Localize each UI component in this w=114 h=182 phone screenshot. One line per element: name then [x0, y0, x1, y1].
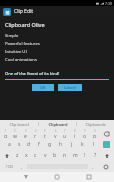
staticText: OK [40, 85, 46, 90]
button[interactable]: m [70, 151, 80, 160]
staticText: e [24, 133, 27, 138]
button[interactable]: 0 [90, 129, 100, 138]
button[interactable]: h [55, 140, 66, 149]
button[interactable]: 9 [80, 129, 90, 138]
button[interactable]: shift [1, 151, 13, 160]
button[interactable]: Recents [83, 172, 95, 182]
staticText: Clip Edit [14, 8, 34, 15]
button[interactable]: b [50, 151, 60, 160]
staticText: 3 [25, 129, 27, 133]
staticText: k [81, 141, 84, 148]
staticText: n [63, 152, 67, 159]
button[interactable]: backspace [100, 129, 113, 138]
button[interactable]: 1 [1, 129, 10, 138]
staticText: x [25, 152, 28, 159]
button[interactable]: 4 [30, 129, 40, 138]
staticText: One of the finest of its kind! [5, 71, 60, 77]
button[interactable]: n [60, 151, 70, 160]
staticText: . [92, 164, 94, 170]
staticText: , [21, 164, 23, 170]
button[interactable]: Clipboard [39, 120, 76, 128]
button[interactable]: shift2 [100, 151, 113, 160]
button[interactable]: , [17, 162, 27, 171]
staticText: f [38, 141, 40, 148]
staticText: Clipboard Olive [5, 21, 45, 28]
button[interactable]: Emoji [98, 162, 113, 171]
button[interactable]: 6 [50, 129, 60, 138]
staticText: c [34, 152, 37, 159]
button[interactable]: ! [80, 151, 90, 160]
button[interactable]: z [13, 151, 22, 160]
button[interactable]: s [14, 140, 24, 149]
button[interactable]: j [66, 140, 77, 149]
staticText: s [18, 141, 21, 148]
staticText: 7 [64, 129, 66, 133]
staticText: Clip board [9, 122, 29, 127]
staticText: Clipboard [48, 122, 68, 127]
button[interactable]: 3 [20, 129, 30, 138]
staticText: 1 [5, 129, 7, 133]
staticText: l [93, 141, 95, 148]
button[interactable]: x [22, 151, 31, 160]
staticText: ?123 [6, 165, 13, 169]
staticText: Simple [5, 33, 19, 39]
staticText: u [63, 133, 67, 138]
button[interactable]: OK [32, 84, 54, 91]
staticText: a [8, 141, 11, 148]
button[interactable]: One of the finest of its kind! [5, 71, 109, 80]
staticText: g [48, 141, 52, 148]
staticText: 6 [55, 129, 57, 133]
staticText: 7:30 [105, 1, 112, 6]
staticText: ! [84, 152, 86, 159]
button[interactable]: 5 [40, 129, 50, 138]
button[interactable]: ? [90, 151, 100, 160]
button[interactable]: ?123 [1, 162, 17, 171]
button[interactable]: 2 [10, 129, 20, 138]
button[interactable]: Home [51, 172, 63, 182]
staticText: o [83, 133, 87, 138]
staticText: 2 [14, 129, 16, 133]
staticText: 9 [84, 129, 86, 133]
staticText: ? [94, 152, 97, 159]
staticText: 5 [44, 129, 46, 133]
button[interactable]: a [4, 140, 14, 149]
staticText: Intuitive UI [5, 49, 27, 55]
staticText: h [59, 141, 63, 148]
button[interactable]: Back [20, 172, 32, 182]
staticText: d [27, 141, 31, 148]
staticText: r [34, 133, 37, 138]
staticText: m [73, 152, 78, 159]
button[interactable]: l [88, 140, 99, 149]
staticText: p [93, 133, 97, 138]
button[interactable]: f [34, 140, 44, 149]
button[interactable]: k [77, 140, 88, 149]
staticText: i [74, 133, 76, 138]
button[interactable]: d [24, 140, 34, 149]
staticText: z [16, 152, 19, 159]
staticText: t [44, 133, 46, 138]
button[interactable]: v [40, 151, 50, 160]
button[interactable]: c [31, 151, 40, 160]
button[interactable]: . [88, 162, 98, 171]
button[interactable]: 8 [70, 129, 80, 138]
button[interactable]: 7 [60, 129, 70, 138]
button[interactable]: g [44, 140, 55, 149]
staticText: Cancel [64, 85, 76, 90]
button[interactable]: Cancel [58, 84, 82, 91]
button[interactable]: Clipboards [77, 120, 114, 128]
other: App icon [3, 8, 11, 16]
staticText: v [44, 152, 47, 159]
staticText: Cool animations [5, 57, 37, 63]
staticText: 0 [94, 129, 96, 133]
staticText: b [53, 152, 57, 159]
button[interactable]: enter [99, 140, 113, 149]
staticText: y [54, 133, 57, 138]
staticText: 4 [35, 129, 37, 133]
staticText: j [71, 141, 73, 148]
staticText: q [4, 133, 8, 138]
staticText: 8 [74, 129, 76, 133]
staticText: Powerful features [5, 41, 40, 47]
staticText: Clipboards [85, 122, 106, 127]
button[interactable]: Clip board [0, 120, 38, 128]
